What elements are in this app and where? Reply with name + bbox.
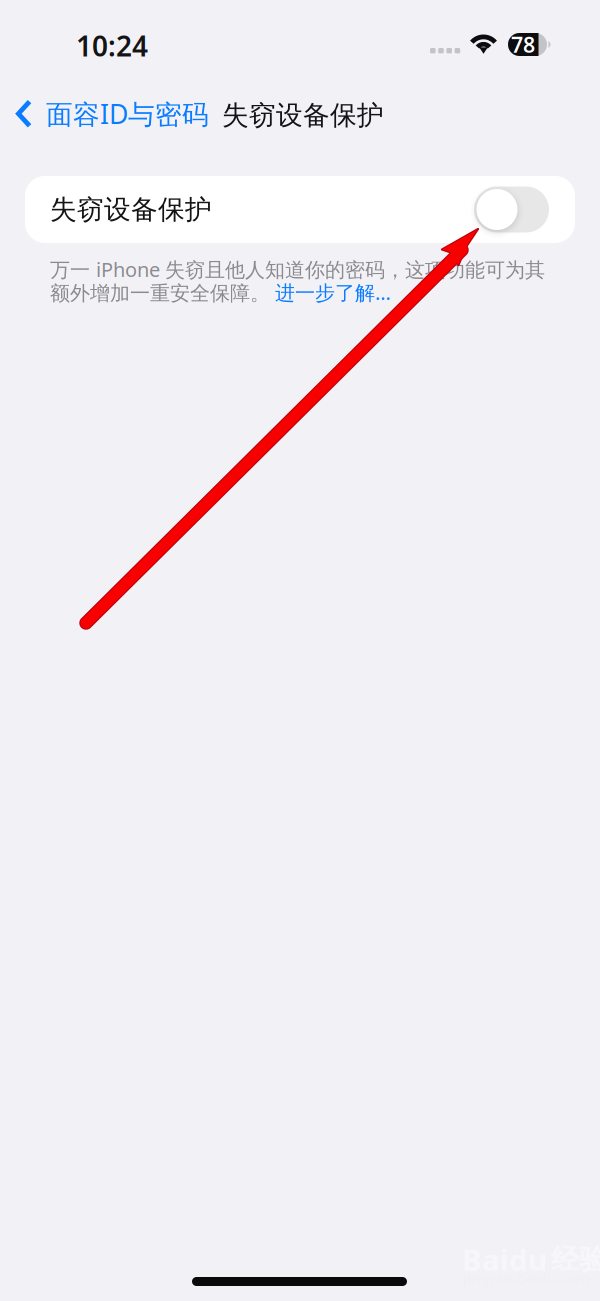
staticText: 失窃设备保护: [222, 99, 384, 132]
staticText: 10:24: [76, 27, 148, 64]
button[interactable]: 进一步了解…: [275, 279, 391, 306]
button[interactable]: 面容ID与密码: [1, 88, 219, 139]
staticText: 万一 iPhone 失窃且他人知道你的密码，这项功能可为其: [50, 256, 545, 283]
staticText: 面容ID与密码: [46, 96, 209, 131]
button[interactable]: 失窃设备保护: [25, 176, 575, 243]
staticText: 78: [511, 30, 535, 59]
staticText: 进一步了解…: [275, 279, 391, 306]
staticText: 失窃设备保护: [50, 193, 212, 226]
staticText: 额外增加一重安全保障。: [50, 281, 270, 306]
